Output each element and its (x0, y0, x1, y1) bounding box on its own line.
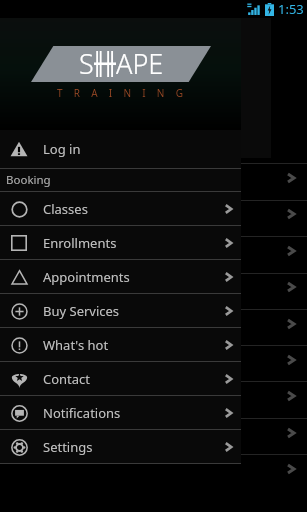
staticText: T R A I N I N G (57, 86, 185, 100)
button[interactable]: Notifications (0, 396, 241, 429)
staticText: Buy Services (43, 302, 120, 320)
button[interactable]: Settings (0, 430, 241, 463)
staticText: Booking (6, 172, 51, 188)
staticText: Log in (43, 140, 81, 158)
button[interactable]: Appointments (0, 260, 241, 293)
staticText: Appointments (43, 268, 130, 286)
staticText: APE (116, 45, 164, 82)
staticText: What's hot (43, 336, 109, 354)
button[interactable]: Buy Services (0, 294, 241, 327)
button[interactable]: Enrollments (0, 226, 241, 259)
staticText: Contact (43, 370, 91, 388)
button[interactable]: What's hot (0, 328, 241, 361)
staticText: S (79, 45, 94, 82)
button[interactable]: Log in (0, 130, 241, 168)
staticText: Settings (43, 438, 93, 456)
staticText: Notifications (43, 404, 121, 422)
button[interactable]: Contact (0, 362, 241, 395)
staticText: Enrollments (43, 234, 117, 252)
staticText: Classes (43, 200, 88, 218)
button[interactable]: Classes (0, 192, 241, 225)
staticText: 1:53 (278, 0, 304, 18)
